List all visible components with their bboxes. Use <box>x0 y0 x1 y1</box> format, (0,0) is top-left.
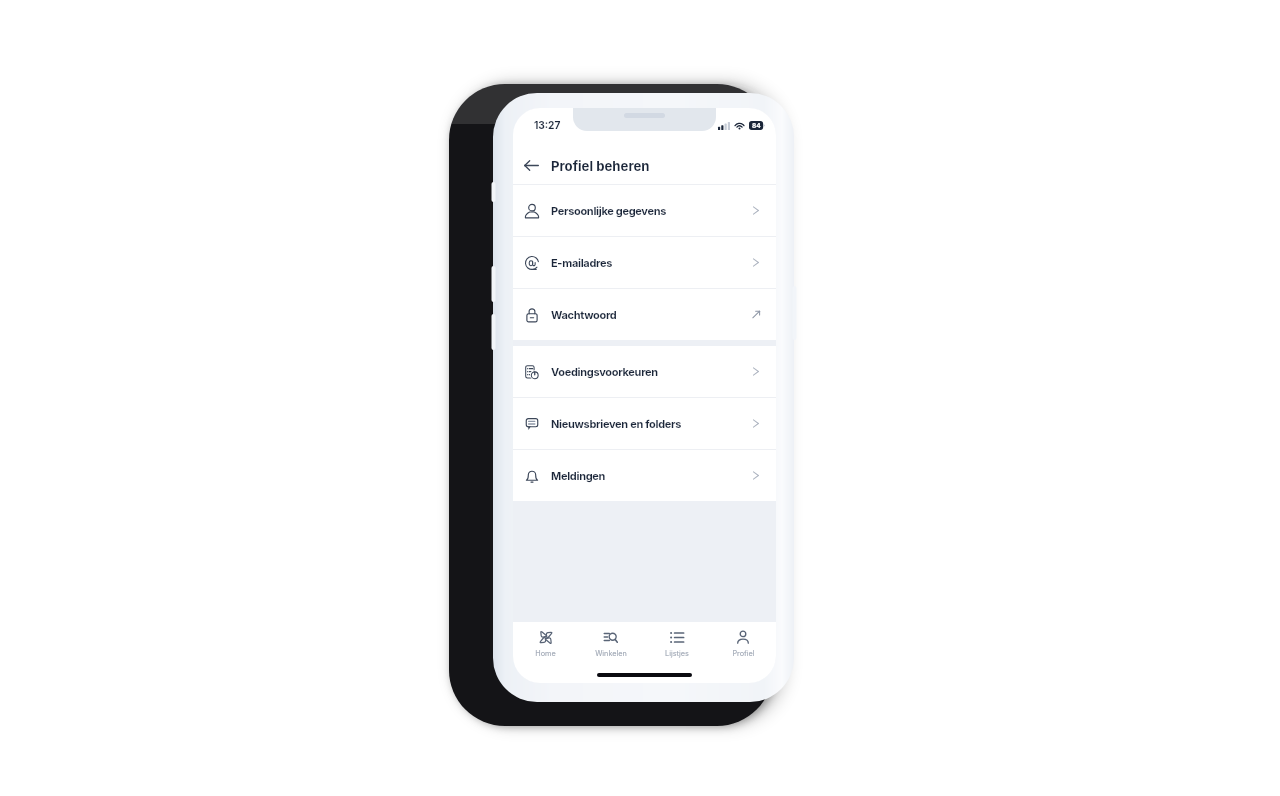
staticText: Voedingsvoorkeuren <box>551 365 658 378</box>
staticText: Wachtwoord <box>551 308 617 321</box>
staticText: Persoonlijke gegevens <box>551 204 667 217</box>
staticText: Profiel beheren <box>551 158 650 174</box>
staticText: Profiel <box>732 649 755 658</box>
staticText: Meldingen <box>551 469 606 482</box>
button[interactable]: Persoonlijke gegevens <box>513 185 776 236</box>
button[interactable]: Home <box>513 622 578 662</box>
button[interactable]: Lijstjes <box>644 622 710 662</box>
button[interactable]: Back <box>515 149 548 182</box>
button[interactable]: Meldingen <box>513 450 776 501</box>
staticText: E-mailadres <box>551 256 613 269</box>
button[interactable]: Wachtwoord <box>513 289 776 340</box>
button[interactable]: Profiel <box>710 622 776 662</box>
button[interactable]: Nieuwsbrieven en folders <box>513 398 776 449</box>
staticText: Home <box>535 649 556 658</box>
button[interactable]: E-mailadres <box>513 237 776 288</box>
staticText: Lijstjes <box>665 649 689 658</box>
staticText: Nieuwsbrieven en folders <box>551 417 682 430</box>
staticText: 84 <box>752 122 761 130</box>
staticText: 13:27 <box>534 119 561 131</box>
staticText: Winkelen <box>595 649 627 658</box>
button[interactable]: Winkelen <box>578 622 644 662</box>
button[interactable]: Voedingsvoorkeuren <box>513 346 776 397</box>
